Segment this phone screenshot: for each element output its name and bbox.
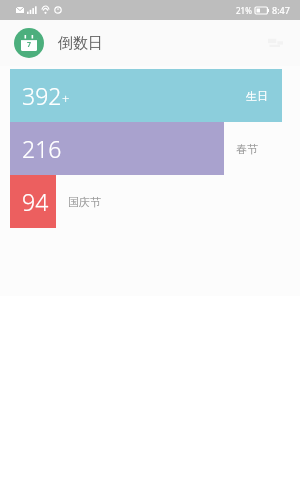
staticText: 392 xyxy=(22,80,62,111)
staticText: 生日 xyxy=(246,89,268,103)
staticText: 21% xyxy=(236,5,252,16)
button[interactable]: App icon xyxy=(14,28,44,58)
staticText: 8:47 xyxy=(272,4,290,16)
button[interactable]: 392 xyxy=(10,69,300,122)
button[interactable]: 94 xyxy=(10,175,300,228)
staticText: 7 xyxy=(27,40,32,50)
staticText: 春节 xyxy=(236,142,258,156)
staticText: 216 xyxy=(22,133,62,164)
staticText: 国庆节 xyxy=(68,195,101,209)
staticText: 倒数日 xyxy=(58,34,103,53)
button[interactable]: 216 xyxy=(10,122,300,175)
staticText: 94 xyxy=(22,186,49,217)
staticText: + xyxy=(62,90,70,108)
